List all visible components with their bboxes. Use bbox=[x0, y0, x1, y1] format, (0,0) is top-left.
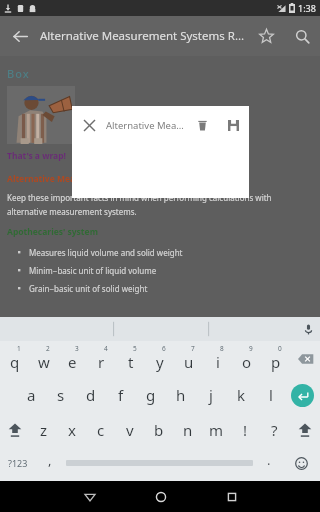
button[interactable]: Save bbox=[217, 109, 249, 141]
button[interactable]: 5 bbox=[116, 341, 145, 377]
button[interactable]: s bbox=[46, 377, 76, 413]
staticText: y bbox=[156, 352, 164, 372]
staticText: 4 bbox=[104, 344, 108, 353]
staticText: ? bbox=[271, 420, 278, 440]
button[interactable]: , bbox=[36, 447, 64, 479]
button[interactable]: v bbox=[115, 413, 144, 447]
staticText: Box bbox=[7, 66, 30, 81]
staticText: Alternative Meas… bbox=[106, 119, 187, 132]
staticText: j bbox=[209, 385, 213, 405]
staticText: 2 bbox=[46, 344, 50, 353]
staticText: e bbox=[68, 352, 77, 372]
button[interactable]: f bbox=[106, 377, 136, 413]
staticText: o bbox=[242, 352, 252, 372]
button[interactable]: Shift bbox=[0, 413, 30, 447]
staticText: 7 bbox=[191, 344, 195, 353]
button[interactable]: 4 bbox=[87, 341, 116, 377]
staticText: h bbox=[176, 385, 186, 405]
button[interactable]: . bbox=[255, 447, 283, 479]
staticText: ! bbox=[243, 420, 248, 440]
button[interactable]: l bbox=[256, 377, 286, 413]
staticText: 1 bbox=[17, 344, 21, 353]
staticText: d bbox=[86, 385, 96, 405]
button[interactable]: 6 bbox=[145, 341, 174, 377]
staticText: f bbox=[118, 385, 124, 405]
button[interactable]: g bbox=[136, 377, 166, 413]
staticText: q bbox=[10, 352, 20, 372]
staticText: That's a wrap! bbox=[7, 150, 66, 162]
button[interactable]: b bbox=[144, 413, 173, 447]
staticText: 6 bbox=[162, 344, 166, 353]
button[interactable]: c bbox=[86, 413, 115, 447]
staticText: u bbox=[184, 352, 194, 372]
button[interactable]: n bbox=[173, 413, 202, 447]
staticText: i bbox=[216, 352, 220, 372]
staticText: p bbox=[271, 352, 281, 372]
staticText: Minim−basic unit of liquid volume bbox=[29, 265, 157, 276]
staticText: . bbox=[267, 451, 271, 469]
button[interactable]: 2 bbox=[29, 341, 58, 377]
button[interactable]: d bbox=[76, 377, 106, 413]
staticText: b bbox=[154, 420, 164, 440]
button[interactable]: Back bbox=[0, 16, 40, 56]
button[interactable]: k bbox=[226, 377, 256, 413]
button[interactable]: Emoji bbox=[283, 447, 320, 479]
staticText: Apothecaries' system bbox=[7, 226, 98, 238]
button[interactable]: Close bbox=[72, 108, 106, 142]
button[interactable]: j bbox=[196, 377, 226, 413]
staticText: l bbox=[269, 385, 273, 405]
staticText: 3 bbox=[75, 344, 79, 353]
button[interactable]: Delete bbox=[187, 110, 217, 140]
staticText: n bbox=[183, 420, 193, 440]
staticText: r bbox=[98, 352, 105, 372]
button[interactable]: ? bbox=[260, 413, 289, 447]
button[interactable]: 1 bbox=[0, 341, 29, 377]
button[interactable]: x bbox=[58, 413, 86, 447]
staticText: Alternative Measurement Systems Review bbox=[40, 28, 248, 44]
staticText: m bbox=[209, 420, 224, 440]
staticText: g bbox=[146, 385, 156, 405]
button[interactable]: 7 bbox=[174, 341, 203, 377]
staticText: 8 bbox=[220, 344, 224, 353]
button[interactable]: Enter bbox=[286, 377, 318, 413]
staticText: v bbox=[126, 420, 134, 440]
staticText: 1:38 bbox=[298, 2, 316, 14]
button[interactable]: Favorite bbox=[248, 18, 284, 54]
staticText: Alternative Measurement Systems bbox=[7, 173, 154, 185]
button[interactable]: Space bbox=[64, 447, 255, 479]
button[interactable]: Recent apps bbox=[211, 481, 253, 512]
staticText: 5 bbox=[133, 344, 137, 353]
staticText: Keep these important facts in mind when … bbox=[7, 192, 272, 217]
staticText: ?123 bbox=[8, 457, 28, 469]
button[interactable]: Shift bbox=[289, 413, 320, 447]
staticText: k bbox=[237, 385, 246, 405]
button[interactable]: ?123 bbox=[0, 447, 36, 479]
staticText: x bbox=[68, 420, 76, 440]
staticText: w bbox=[38, 352, 50, 372]
staticText: 0 bbox=[278, 344, 282, 353]
staticText: z bbox=[40, 420, 48, 440]
button[interactable]: z bbox=[30, 413, 58, 447]
button[interactable]: a bbox=[16, 377, 46, 413]
button[interactable]: m bbox=[202, 413, 231, 447]
button[interactable]: 3 bbox=[58, 341, 87, 377]
button[interactable]: 8 bbox=[203, 341, 232, 377]
button[interactable]: Search bbox=[284, 18, 320, 54]
staticText: a bbox=[27, 385, 36, 405]
button[interactable]: h bbox=[166, 377, 196, 413]
staticText: t bbox=[128, 352, 134, 372]
staticText: s bbox=[57, 385, 65, 405]
staticText: Measures liquid volume and solid weight bbox=[29, 247, 183, 258]
button[interactable]: 9 bbox=[232, 341, 261, 377]
button[interactable]: Voice input bbox=[296, 317, 320, 341]
button[interactable]: Back bbox=[68, 481, 111, 512]
staticText: c bbox=[97, 420, 105, 440]
staticText: 9 bbox=[249, 344, 253, 353]
button[interactable]: Home bbox=[140, 481, 182, 512]
button[interactable]: ! bbox=[231, 413, 260, 447]
button[interactable]: Backspace bbox=[290, 341, 320, 377]
staticText: , bbox=[48, 451, 52, 469]
staticText: Grain−basic unit of solid weight bbox=[29, 283, 148, 294]
button[interactable]: 0 bbox=[261, 341, 290, 377]
